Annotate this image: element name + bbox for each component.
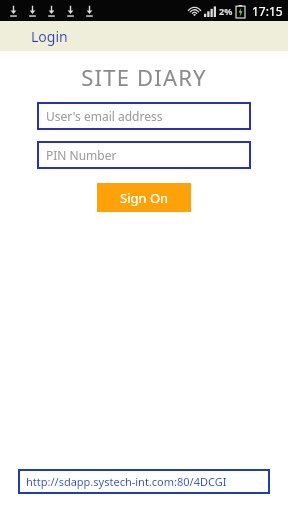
staticText: 17:15 <box>252 3 283 19</box>
staticText: User's email address <box>46 108 163 124</box>
staticText: SITE DIARY <box>81 62 207 92</box>
staticText: Sign On <box>120 189 169 207</box>
staticText: 2% <box>219 5 233 17</box>
button[interactable]: http://sdapp.systech-int.com:80/4DCGI <box>18 469 270 494</box>
staticText: http://sdapp.systech-int.com:80/4DCGI <box>26 474 227 489</box>
staticText: Login <box>31 27 68 46</box>
button[interactable]: User's email address <box>37 102 251 130</box>
button[interactable]: Sign On <box>97 183 191 212</box>
button[interactable]: PIN Number <box>37 141 251 169</box>
staticText: PIN Number <box>46 147 117 163</box>
